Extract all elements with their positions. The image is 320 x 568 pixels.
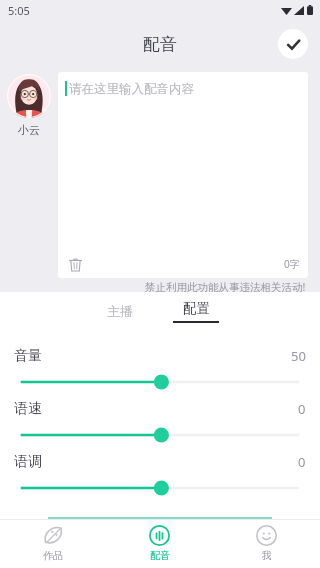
staticText: 50 [291,347,306,365]
button[interactable]: 语调 [0,479,320,497]
staticText: 语调 [14,453,42,471]
staticText: 主播 [107,303,133,319]
button[interactable]: 主播 [91,297,149,325]
staticText: 配置 [183,300,210,317]
staticText: 配音 [143,34,177,55]
button[interactable]: 配音 [106,520,213,568]
staticText: 小云 [18,123,40,137]
button[interactable]: 确认 [278,29,308,59]
staticText: 请在这里输入配音内容 [69,81,194,97]
staticText: 0 [298,453,306,471]
staticText: 作品 [43,549,63,562]
button[interactable]: 配置 [163,300,229,323]
staticText: 配音 [150,549,170,562]
staticText: 语速 [14,400,42,418]
staticText: 我 [262,549,272,562]
staticText: 0 [298,400,306,418]
staticText: 音量 [14,347,42,365]
button[interactable]: 作品 [0,520,106,568]
button[interactable]: 清空 [66,255,84,273]
staticText: 0字 [284,257,300,271]
button[interactable]: 音量 [0,373,320,391]
button[interactable]: 主播 小云 [7,74,51,118]
staticText: 禁止利用此功能从事违法相关活动! [145,280,306,292]
button[interactable]: 我 [213,520,320,568]
staticText: 5:05 [8,3,30,18]
button[interactable]: 语速 [0,426,320,444]
